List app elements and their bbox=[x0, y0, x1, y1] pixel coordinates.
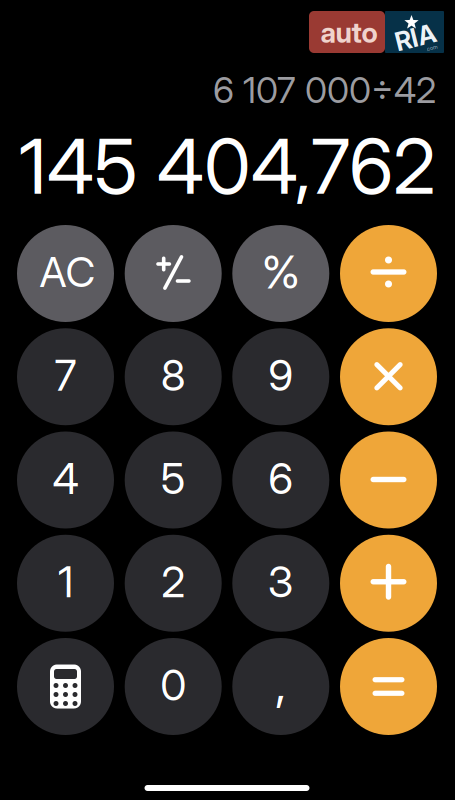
staticText: 8 bbox=[161, 349, 186, 401]
staticText: 3 bbox=[268, 556, 294, 607]
staticText: , bbox=[275, 652, 286, 713]
staticText: 1 bbox=[58, 556, 73, 607]
button[interactable]: Add bbox=[340, 535, 437, 632]
button[interactable]: Subtract bbox=[340, 431, 437, 528]
button[interactable]: 4 bbox=[17, 431, 114, 528]
staticText: 2 bbox=[161, 556, 185, 607]
button[interactable]: Divide bbox=[340, 225, 437, 322]
button[interactable]: Equals bbox=[340, 638, 437, 735]
staticText: RIA bbox=[395, 22, 436, 53]
staticText: auto bbox=[320, 16, 377, 49]
button[interactable]: 5 bbox=[125, 431, 222, 528]
staticText: 7 bbox=[54, 349, 76, 401]
staticText: 0 bbox=[160, 659, 186, 711]
button[interactable]: Multiply bbox=[340, 328, 437, 425]
staticText: 4 bbox=[52, 453, 78, 504]
button[interactable]: 8 bbox=[125, 328, 222, 425]
button[interactable]: 9 bbox=[232, 328, 329, 425]
button[interactable]: Calculator bbox=[17, 638, 114, 735]
button[interactable]: 1 bbox=[17, 535, 114, 632]
staticText: 5 bbox=[161, 453, 186, 504]
button[interactable]: Plus Minus bbox=[125, 225, 222, 322]
button[interactable]: 3 bbox=[232, 535, 329, 632]
button[interactable]: % bbox=[232, 225, 329, 322]
button[interactable]: AC bbox=[17, 225, 114, 322]
staticText: % bbox=[262, 245, 300, 299]
button[interactable]: 2 bbox=[125, 535, 222, 632]
staticText: .com bbox=[426, 45, 437, 51]
staticText: 145 404,762 bbox=[19, 120, 436, 212]
button[interactable]: , bbox=[232, 638, 329, 735]
button[interactable]: 7 bbox=[17, 328, 114, 425]
staticText: AC bbox=[39, 247, 95, 297]
button[interactable]: 6 bbox=[232, 431, 329, 528]
button[interactable]: 0 bbox=[125, 638, 222, 735]
staticText: 6 107 000÷42 bbox=[213, 68, 436, 112]
staticText: 9 bbox=[268, 349, 293, 401]
staticText: 6 bbox=[268, 453, 293, 504]
